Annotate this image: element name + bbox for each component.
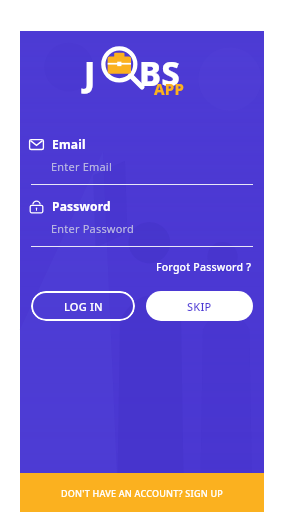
button[interactable]: SKIP: [146, 291, 253, 321]
staticText: Forgot Password ?: [156, 260, 252, 274]
staticText: Password: [52, 198, 111, 214]
staticText: LOG IN: [64, 299, 103, 314]
staticText: J: [84, 51, 96, 96]
button[interactable]: DON'T HAVE AN ACCOUNT? SIGN UP: [20, 473, 264, 512]
staticText: SKIP: [187, 299, 212, 314]
button[interactable]: LOG IN: [31, 291, 135, 321]
staticText: APP: [154, 79, 185, 99]
other: Email: [29, 137, 44, 152]
staticText: BS: [139, 51, 181, 96]
staticText: DON'T HAVE AN ACCOUNT? SIGN UP: [61, 487, 223, 499]
other: Password: [29, 199, 44, 214]
button[interactable]: Forgot Password ?: [144, 257, 264, 277]
button[interactable]: Email: [29, 136, 264, 152]
staticText: Email: [52, 136, 86, 152]
other: Jobs App logo: [82, 43, 202, 101]
staticText: Enter Password: [51, 221, 135, 236]
button[interactable]: Password: [29, 198, 264, 214]
staticText: Enter Email: [51, 159, 112, 174]
